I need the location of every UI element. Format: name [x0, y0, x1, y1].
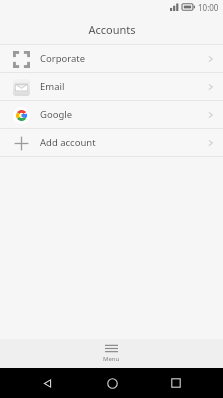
button[interactable]: Menu: [0, 339, 223, 368]
staticText: Corporate: [40, 52, 86, 65]
button[interactable]: Recents: [159, 368, 193, 398]
button[interactable]: Back: [30, 368, 64, 398]
staticText: 10:00: [198, 2, 219, 13]
staticText: Google: [40, 108, 73, 121]
button[interactable]: Corporate: [0, 45, 223, 72]
staticText: Accounts: [88, 22, 136, 37]
staticText: Email: [40, 80, 65, 93]
button[interactable]: Home: [95, 368, 129, 398]
button[interactable]: Google: [0, 101, 223, 128]
staticText: Menu: [103, 355, 120, 363]
button[interactable]: Email: [0, 73, 223, 100]
staticText: Add account: [40, 136, 96, 149]
button[interactable]: Add account: [0, 129, 223, 156]
